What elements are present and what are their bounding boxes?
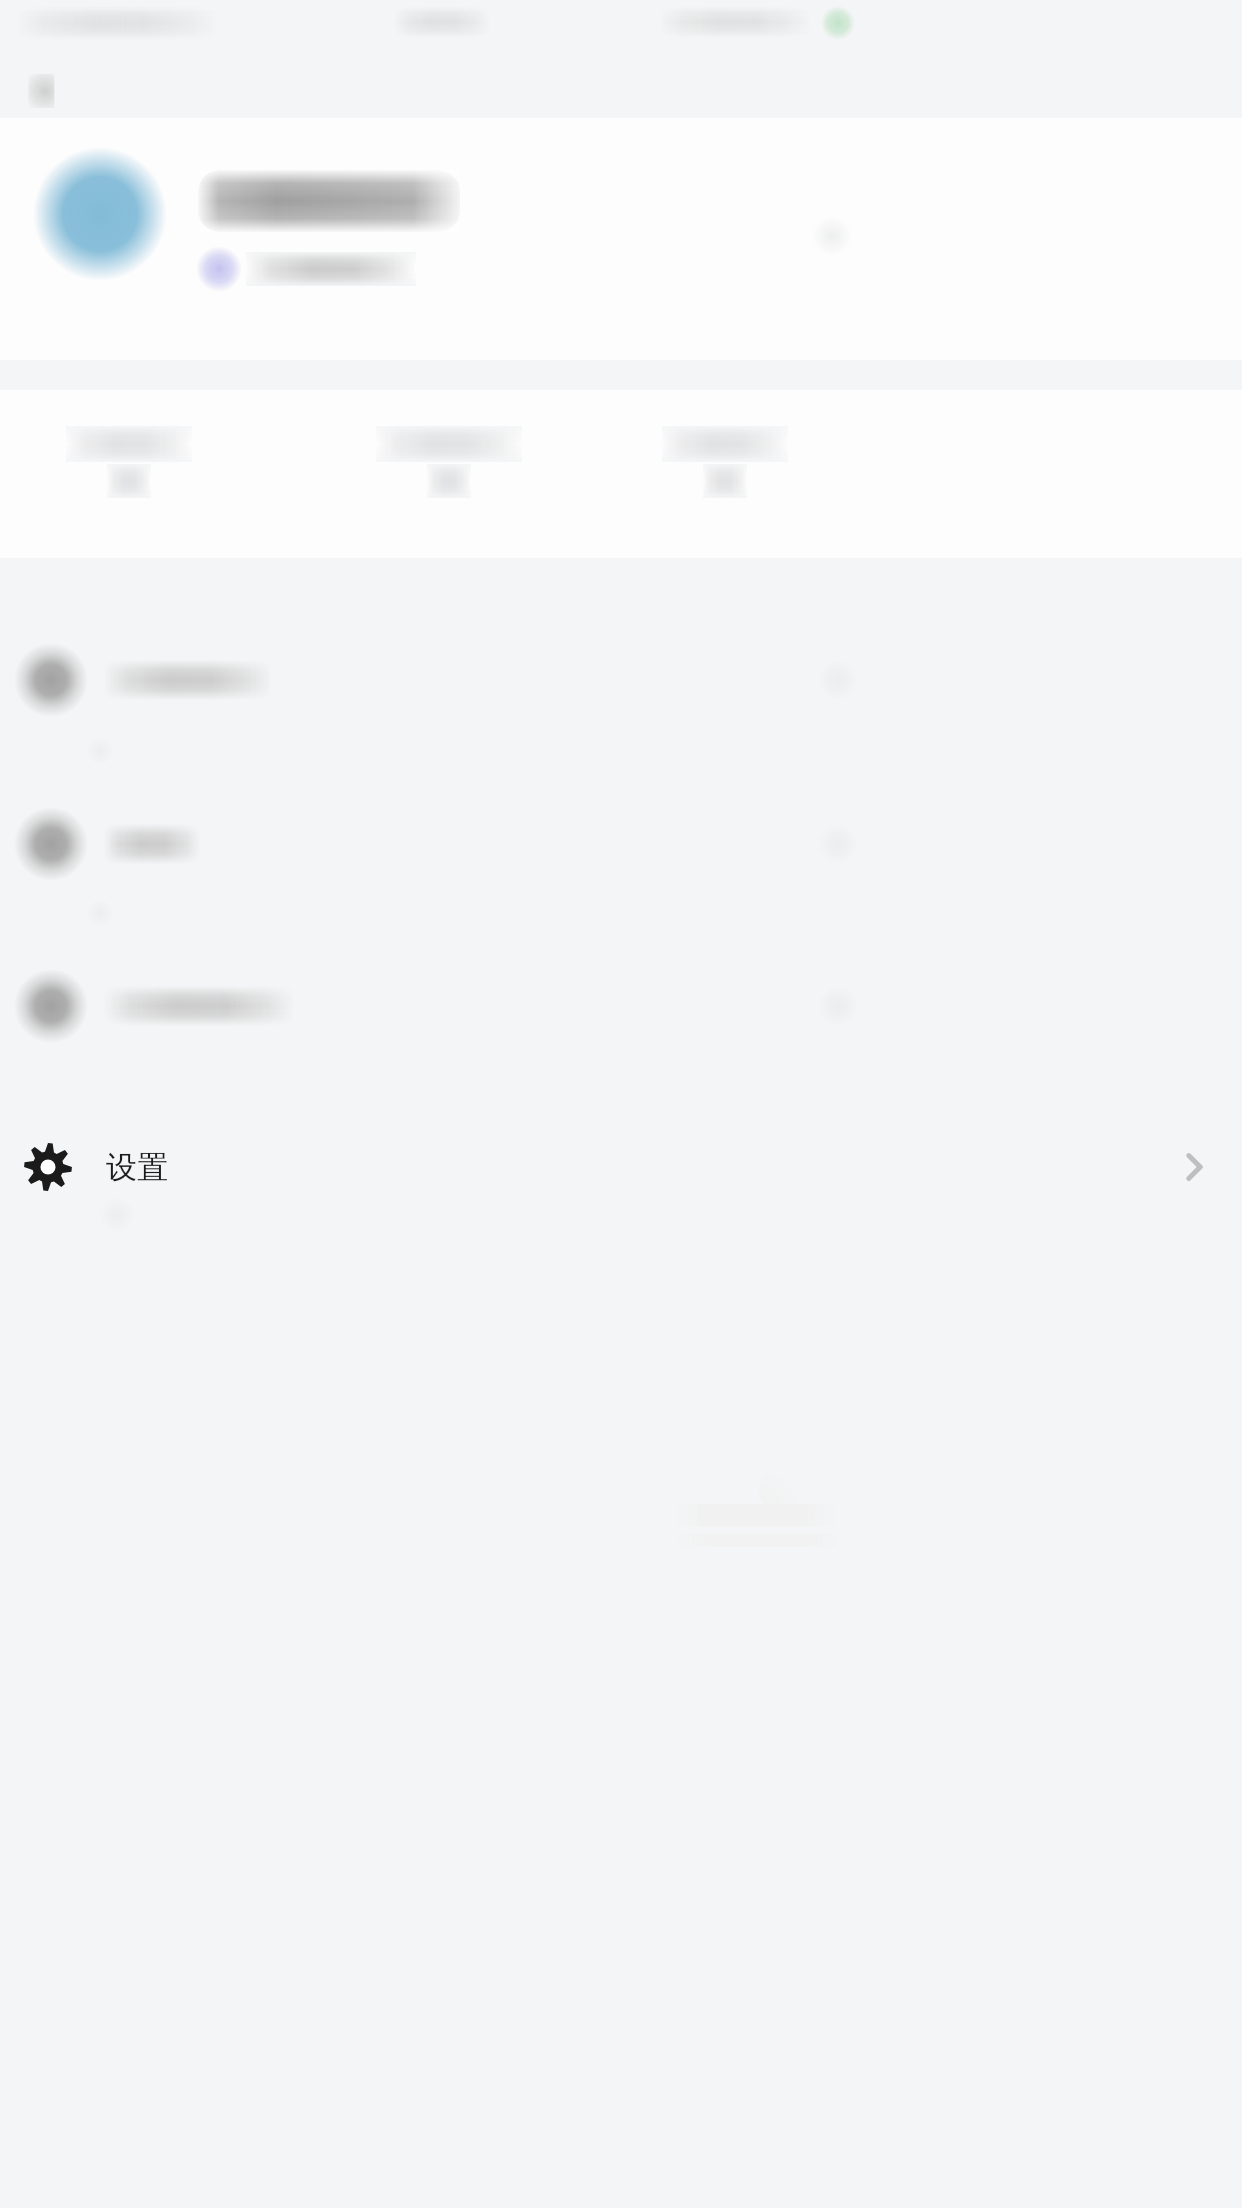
staticText: 设置 (106, 1148, 168, 1187)
button[interactable] (0, 118, 1242, 360)
button[interactable] (0, 390, 1242, 558)
button[interactable] (0, 390, 1242, 558)
button[interactable] (648, 426, 810, 522)
button[interactable]: 设置 (0, 1118, 1242, 1216)
button[interactable] (0, 786, 1242, 902)
button[interactable] (52, 426, 214, 522)
button[interactable] (0, 622, 1242, 738)
button[interactable] (0, 390, 1242, 558)
button[interactable] (362, 426, 544, 522)
button[interactable] (0, 948, 1242, 1064)
button[interactable]: Back (22, 68, 68, 114)
